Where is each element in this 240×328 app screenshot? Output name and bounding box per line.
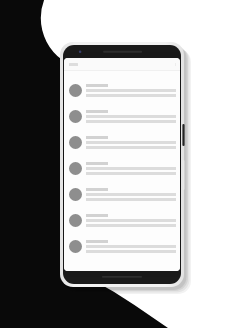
button[interactable]: More options xyxy=(64,58,180,71)
button[interactable] xyxy=(64,103,180,129)
button[interactable] xyxy=(64,77,180,103)
other: Phone side buttons xyxy=(60,42,184,287)
button[interactable] xyxy=(64,233,180,259)
button[interactable] xyxy=(64,129,180,155)
button[interactable] xyxy=(64,207,180,233)
button[interactable] xyxy=(64,181,180,207)
button[interactable] xyxy=(64,155,180,181)
